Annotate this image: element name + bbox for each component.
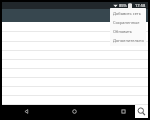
button[interactable]: Дополнительно <box>110 36 146 45</box>
button[interactable] <box>2 96 148 105</box>
button[interactable] <box>2 51 148 60</box>
button[interactable] <box>2 69 148 78</box>
button[interactable]: Zoom <box>135 105 148 118</box>
button[interactable] <box>2 87 148 96</box>
button[interactable] <box>2 42 148 51</box>
staticText: 17:58 <box>135 3 146 8</box>
button[interactable] <box>2 32 148 42</box>
staticText: Сохраненные сети <box>113 20 144 25</box>
button[interactable]: Обновить <box>110 27 146 36</box>
button[interactable]: Back <box>2 105 50 118</box>
button[interactable] <box>2 78 148 87</box>
staticText: 85% <box>119 3 127 8</box>
button[interactable]: More options <box>139 12 147 20</box>
staticText: Дополнительно <box>113 38 144 43</box>
button[interactable]: Добавить сеть <box>110 9 146 18</box>
button[interactable] <box>2 22 148 32</box>
button[interactable]: Сохраненные сети <box>110 18 146 27</box>
staticText: Добавить сеть <box>113 11 141 16</box>
button[interactable]: Home <box>50 105 99 118</box>
button[interactable] <box>2 60 148 69</box>
button[interactable]: Recent apps <box>99 105 148 118</box>
staticText: Обновить <box>113 29 133 34</box>
